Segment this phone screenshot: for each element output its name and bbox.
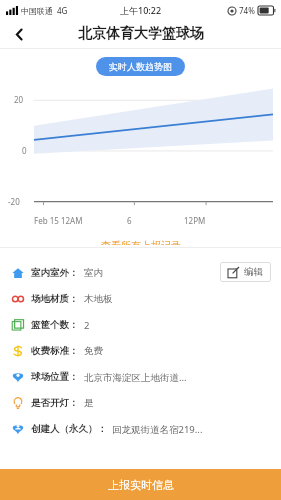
staticText: 北京体育大学篮球场 xyxy=(78,25,204,43)
staticText: 球场位置： xyxy=(31,371,79,383)
staticText: 74% xyxy=(239,5,255,16)
staticText: 创建人（永久）： xyxy=(31,423,107,435)
button[interactable]: 上报实时信息 xyxy=(0,469,281,500)
button[interactable]: 室内室外： xyxy=(0,260,281,286)
staticText: 编辑 xyxy=(244,266,263,278)
staticText: 篮筐个数： xyxy=(31,319,79,331)
staticText: 2 xyxy=(84,319,90,332)
staticText: 上午10:22 xyxy=(120,4,162,16)
staticText: 12PM xyxy=(184,215,206,226)
staticText: 收费标准： xyxy=(31,345,79,357)
staticText: 场地材质： xyxy=(31,293,79,305)
button[interactable]: 创建人（永久）： xyxy=(0,416,281,442)
button[interactable]: 篮筐个数： xyxy=(0,312,281,338)
button[interactable]: 编辑 xyxy=(220,262,271,282)
staticText: 木地板 xyxy=(84,293,113,305)
staticText: 是 xyxy=(84,397,94,409)
staticText: 6 xyxy=(127,215,132,226)
button[interactable]: 查看所有上报记录 xyxy=(93,237,189,247)
staticText: 是否开灯： xyxy=(31,397,79,409)
staticText: Feb 15 12AM xyxy=(34,215,83,226)
staticText: 免费 xyxy=(84,345,103,357)
staticText: 室内 xyxy=(84,267,103,279)
staticText: 回龙观街道名宿219... xyxy=(112,423,203,436)
staticText: 4G xyxy=(57,5,68,16)
button[interactable]: 是否开灯： xyxy=(0,390,281,416)
button[interactable]: 实时人数趋势图 xyxy=(96,57,185,76)
staticText: 上报实时信息 xyxy=(108,478,174,492)
staticText: 查看所有上报记录 xyxy=(101,239,181,245)
staticText: 实时人数趋势图 xyxy=(109,61,172,72)
staticText: 北京市海淀区上地街道... xyxy=(84,371,187,384)
staticText: 室内室外： xyxy=(31,267,79,279)
staticText: -20 xyxy=(8,196,20,207)
staticText: 0 xyxy=(22,145,27,156)
button[interactable]: 球场位置： xyxy=(0,364,281,390)
button[interactable]: 收费标准： xyxy=(0,338,281,364)
button[interactable]: 场地材质： xyxy=(0,286,281,312)
staticText: 20 xyxy=(14,94,24,105)
staticText: 中国联通 xyxy=(21,6,53,16)
button[interactable]: Back xyxy=(6,21,32,47)
